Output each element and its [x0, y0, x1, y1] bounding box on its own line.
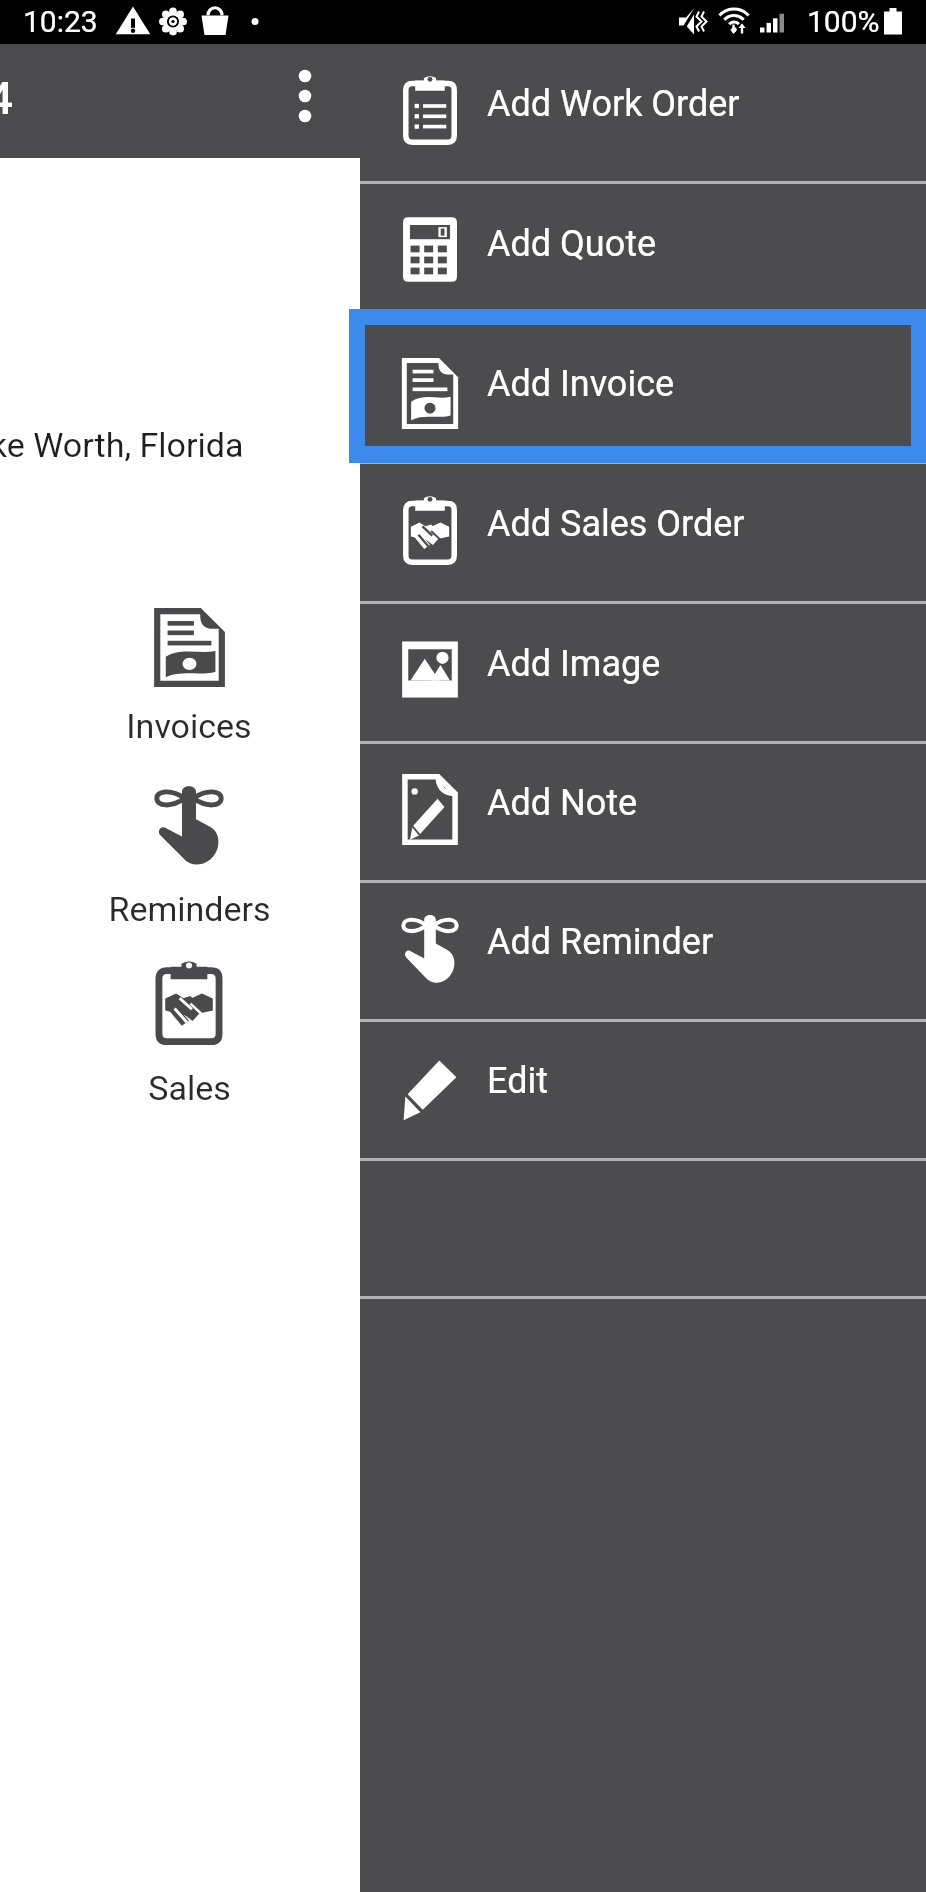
staticText: Add Invoice [487, 363, 675, 405]
staticText: Invoices [126, 706, 252, 746]
button[interactable]: Add Image [360, 604, 926, 741]
button[interactable]: Add Invoice [360, 324, 926, 461]
staticText: Lake Worth, Florida [0, 425, 244, 465]
button[interactable]: Add Reminder [360, 883, 926, 1019]
staticText: 10:23 [23, 4, 98, 39]
staticText: Add Note [487, 782, 638, 824]
button[interactable]: Add Work Order [360, 44, 926, 181]
button[interactable]: More options [275, 71, 335, 131]
staticText: Add Image [487, 643, 661, 685]
staticText: Add Quote [487, 223, 657, 265]
staticText: Add Invoice [487, 363, 675, 405]
button[interactable]: Add Invoice [349, 309, 926, 463]
staticText: 4 [0, 73, 14, 125]
button[interactable]: Add Sales Order [360, 464, 926, 601]
staticText: Add Sales Order [487, 503, 745, 545]
staticText: Add Work Order [487, 83, 740, 125]
staticText: Sales [148, 1068, 231, 1108]
button[interactable]: Invoices [94, 608, 284, 746]
button[interactable]: Add Quote [360, 184, 926, 321]
button[interactable]: Reminders [94, 784, 284, 929]
staticText: 100% [807, 4, 880, 39]
staticText: Edit [487, 1060, 548, 1102]
button[interactable]: Add Note [360, 744, 926, 880]
staticText: Reminders [108, 889, 271, 929]
button[interactable]: Edit [360, 1022, 926, 1158]
staticText: Add Reminder [487, 921, 714, 963]
button[interactable]: Sales [94, 959, 284, 1108]
